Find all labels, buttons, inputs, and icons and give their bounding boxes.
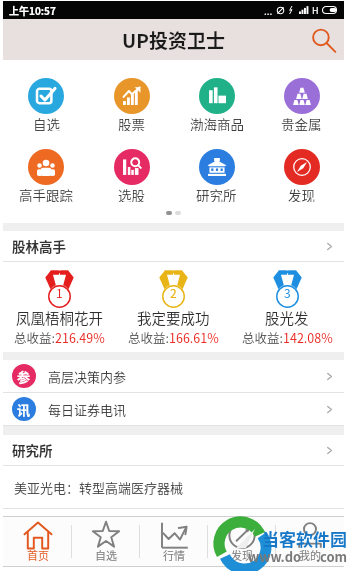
button[interactable]: 研究所	[3, 435, 344, 465]
staticText: 研究所	[196, 185, 237, 202]
staticText: 总收益:	[14, 328, 55, 346]
staticText: 发现	[288, 185, 315, 202]
staticText: 2	[170, 284, 177, 301]
button[interactable]: 3	[230, 262, 344, 352]
staticText: 渤海商品	[190, 114, 244, 131]
button[interactable]: 自选	[3, 78, 89, 131]
staticText: H	[312, 4, 319, 17]
staticText: 选股	[118, 185, 145, 202]
staticText: 贵金属	[281, 114, 322, 131]
staticText: 美亚光电：转型高端医疗器械	[14, 478, 184, 497]
staticText: 首页	[27, 547, 49, 563]
button[interactable]: 高手跟踪	[3, 149, 89, 202]
staticText: 讯	[17, 400, 31, 419]
staticText: 我定要成功	[137, 307, 210, 328]
staticText: 142.08%	[283, 328, 333, 346]
button[interactable]: 发现	[208, 517, 276, 566]
staticText: 总收益:	[128, 328, 169, 346]
staticText: 参	[17, 367, 31, 386]
staticText: 自选	[33, 114, 60, 131]
staticText: 自选	[95, 547, 117, 563]
button[interactable]: 研究所	[174, 149, 259, 202]
button[interactable]: 自选	[72, 517, 140, 566]
staticText: 发现	[231, 547, 253, 563]
staticText: 股光发	[265, 307, 309, 328]
button[interactable]: 首页	[3, 517, 72, 566]
staticText: 总收益:	[242, 328, 283, 346]
staticText: www.do .com	[248, 547, 347, 566]
button[interactable]: 我的	[276, 517, 344, 566]
staticText: ...	[264, 3, 273, 17]
button[interactable]: Search	[310, 27, 336, 53]
staticText: 上午10:57	[9, 3, 56, 17]
staticText: 股林高手	[12, 236, 66, 256]
staticText: 216.49%	[55, 328, 105, 346]
staticText: 每日证券电讯	[48, 400, 127, 419]
button[interactable]: 发现	[259, 149, 344, 202]
button[interactable]: 股票	[89, 78, 174, 131]
staticText: 166.61%	[169, 328, 219, 346]
button[interactable]: 选股	[89, 149, 174, 202]
button[interactable]: 美亚光电：转型高端医疗器械	[3, 466, 344, 508]
button[interactable]: 股林高手	[3, 231, 344, 261]
staticText: 研究所	[12, 440, 53, 460]
button[interactable]: 参	[3, 360, 344, 392]
button[interactable]: 讯	[3, 393, 344, 425]
staticText: 当客软件园	[262, 526, 347, 551]
staticText: 高层决策内参	[48, 367, 127, 386]
staticText: 行情	[163, 547, 185, 563]
button[interactable]: 2	[116, 262, 230, 352]
staticText: 3	[284, 284, 291, 301]
button[interactable]: 贵金属	[259, 78, 344, 131]
staticText: 我的	[299, 547, 321, 563]
staticText: UP投资卫士	[122, 26, 225, 54]
staticText: 股票	[118, 114, 145, 131]
button[interactable]: 渤海商品	[174, 78, 259, 131]
staticText: 凤凰梧桐花开	[16, 307, 103, 328]
staticText: 1	[56, 284, 63, 301]
staticText: 高手跟踪	[19, 185, 73, 202]
button[interactable]: 1	[3, 262, 116, 352]
button[interactable]: 行情	[140, 517, 208, 566]
